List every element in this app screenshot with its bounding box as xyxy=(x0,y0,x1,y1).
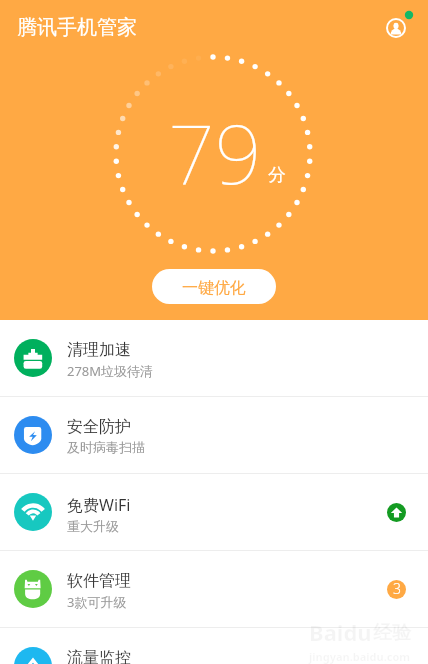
button[interactable]: 软件管理 xyxy=(0,551,428,628)
staticText: 流量监控 xyxy=(67,648,131,664)
staticText: 经验 xyxy=(373,621,411,645)
button[interactable]: 安全防护 xyxy=(0,397,428,474)
staticText: 分 xyxy=(268,164,286,187)
staticText: 清理加速 xyxy=(67,340,131,360)
staticText: 及时病毒扫描 xyxy=(67,439,145,455)
button[interactable]: 一键优化 xyxy=(152,269,276,304)
staticText: 腾讯手机管家 xyxy=(17,15,137,40)
staticText: 软件管理 xyxy=(67,571,131,591)
staticText: Baidu xyxy=(309,617,372,647)
staticText: jingyan.baidu.com xyxy=(309,649,411,664)
staticText: 3款可升级 xyxy=(67,593,127,610)
button[interactable]: 流量监控 xyxy=(0,628,428,664)
staticText: 免费WiFi xyxy=(67,494,131,516)
staticText: 79 xyxy=(168,96,262,208)
staticText: 3 xyxy=(393,580,401,598)
staticText: 安全防护 xyxy=(67,417,131,437)
button[interactable]: 免费WiFi xyxy=(0,474,428,551)
button[interactable]: 清理加速 xyxy=(0,320,428,397)
button[interactable]: Account xyxy=(376,8,416,48)
staticText: 一键优化 xyxy=(182,278,246,298)
staticText: 重大升级 xyxy=(67,518,119,533)
staticText: 278M垃圾待清 xyxy=(67,362,154,379)
button[interactable]: Upgrade xyxy=(387,503,406,522)
